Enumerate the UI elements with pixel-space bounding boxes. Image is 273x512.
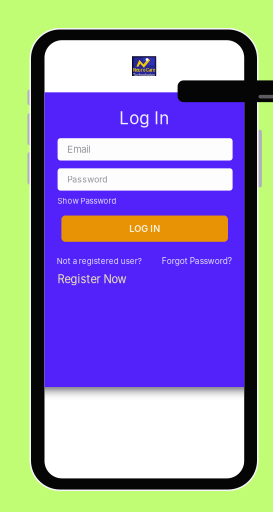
button[interactable]: Show Password xyxy=(58,196,120,206)
button[interactable]: Not a registered user? xyxy=(57,256,145,266)
staticText: Forgot Password? xyxy=(162,256,232,266)
staticText: Not a registered user? xyxy=(57,256,142,266)
staticText: Password xyxy=(67,174,107,185)
staticText: Email xyxy=(67,144,90,155)
button[interactable]: Forgot Password? xyxy=(162,256,234,266)
staticText: NeuroCare xyxy=(133,68,155,73)
button[interactable]: LOG IN xyxy=(61,215,228,242)
staticText: Technologies xyxy=(133,73,155,77)
staticText: LOG IN xyxy=(129,223,160,234)
staticText: Log In xyxy=(119,108,169,128)
button[interactable]: Register Now xyxy=(58,273,130,286)
staticText: Show Password xyxy=(58,196,117,206)
staticText: Register Now xyxy=(58,272,127,286)
